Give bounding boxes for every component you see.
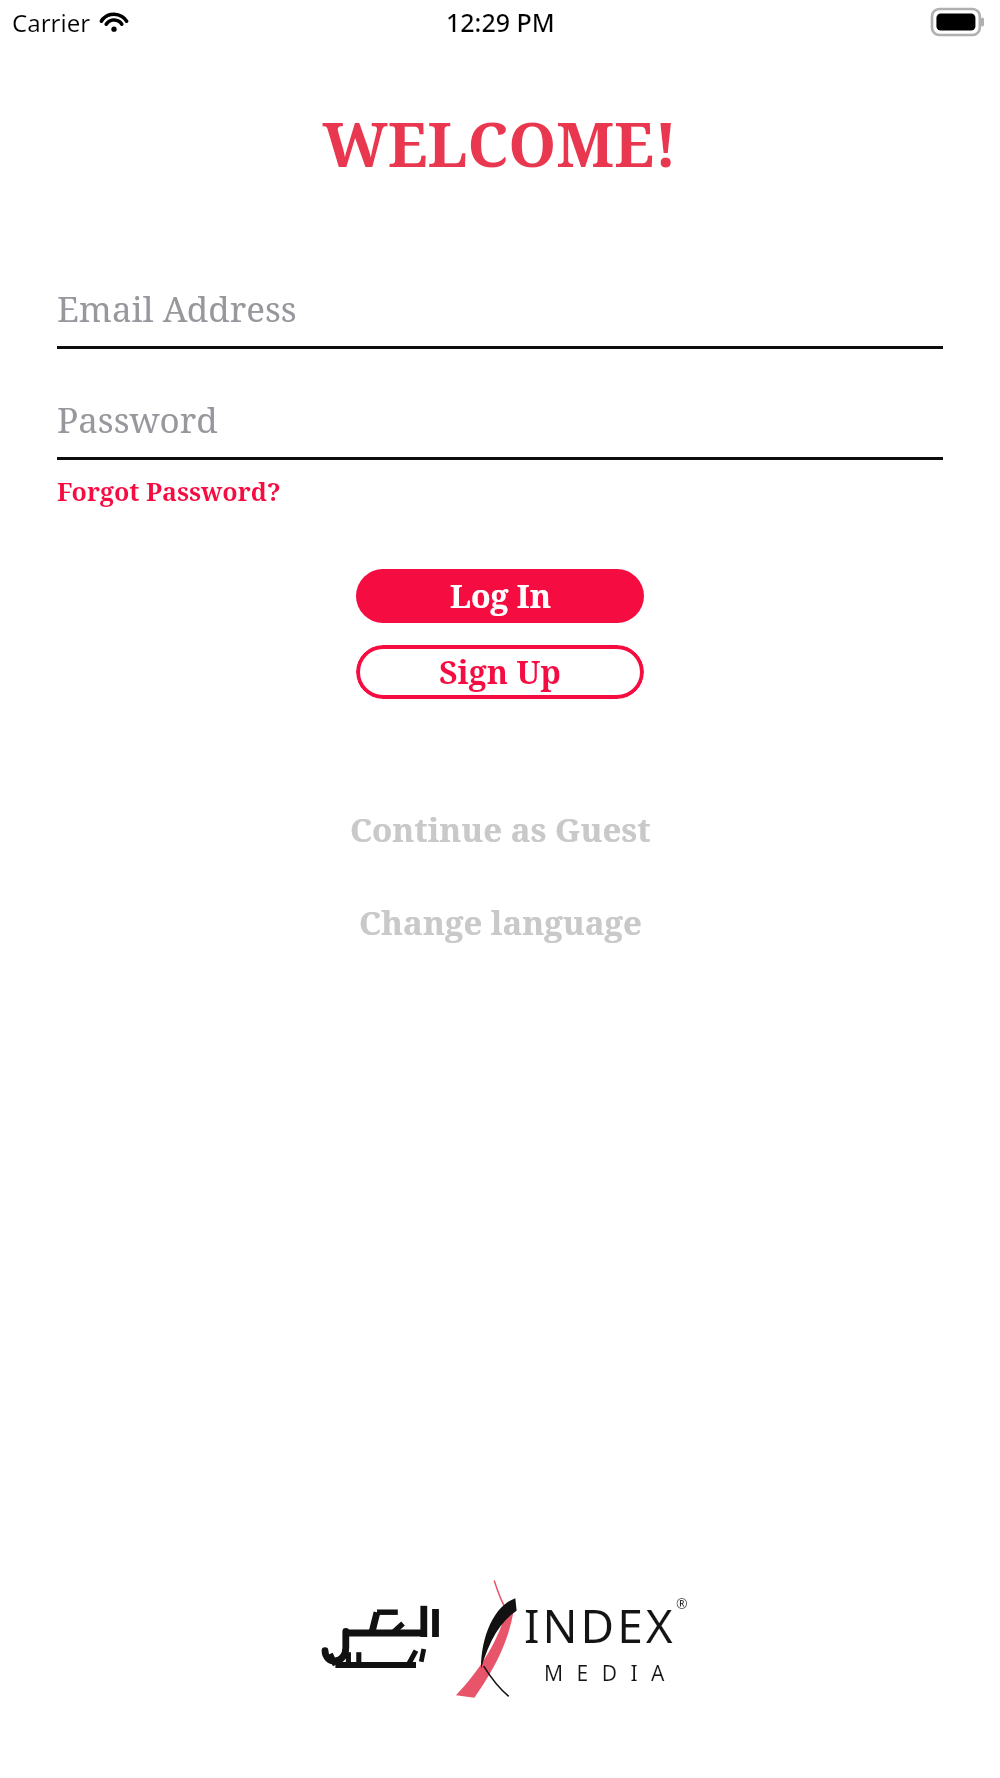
staticText: ® <box>676 1594 688 1613</box>
staticText: INDEX <box>524 1594 676 1657</box>
staticText: Continue as Guest <box>350 807 651 852</box>
button[interactable]: Forgot Password? <box>57 469 281 513</box>
other: Index Media logo <box>312 1576 688 1706</box>
button[interactable]: Continue as Guest <box>330 799 671 860</box>
staticText: WELCOME! <box>0 102 1000 185</box>
staticText: Carrier <box>12 6 91 39</box>
staticText: Log In <box>450 574 551 618</box>
staticText: M E D I A <box>544 1659 669 1688</box>
staticText: Sign Up <box>439 650 561 694</box>
staticText: Email Address <box>57 285 297 333</box>
button[interactable]: Log In <box>356 569 644 623</box>
button[interactable]: Password <box>57 396 943 460</box>
button[interactable]: Email Address <box>57 285 943 349</box>
staticText: Forgot Password? <box>57 474 281 508</box>
staticText: Password <box>57 396 218 444</box>
staticText: Change language <box>359 900 642 945</box>
button[interactable]: Change language <box>339 892 662 953</box>
staticText: 12:29 PM <box>446 5 555 39</box>
button[interactable]: Sign Up <box>356 645 644 699</box>
